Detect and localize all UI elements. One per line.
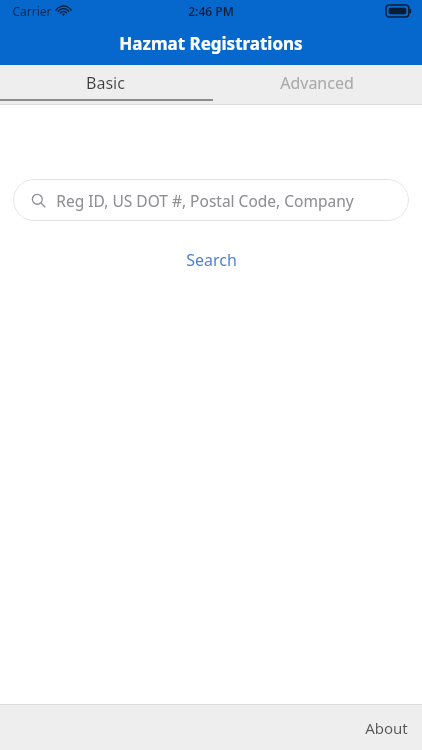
button[interactable]: Basic [0, 65, 211, 105]
staticText: 2:46 PM [188, 3, 234, 19]
staticText: Advanced [280, 72, 354, 94]
staticText: About [365, 718, 408, 738]
staticText: Reg ID, US DOT #, Postal Code, Company [56, 190, 354, 211]
staticText: Carrier [12, 3, 52, 19]
button[interactable]: Search [172, 246, 251, 274]
button[interactable]: Reg ID, US DOT #, Postal Code, Company [13, 179, 409, 221]
button[interactable]: About [351, 708, 422, 748]
staticText: Basic [86, 72, 125, 94]
staticText: Hazmat Registrations [119, 32, 303, 55]
staticText: Search [186, 249, 237, 271]
button[interactable]: Advanced [211, 65, 422, 105]
